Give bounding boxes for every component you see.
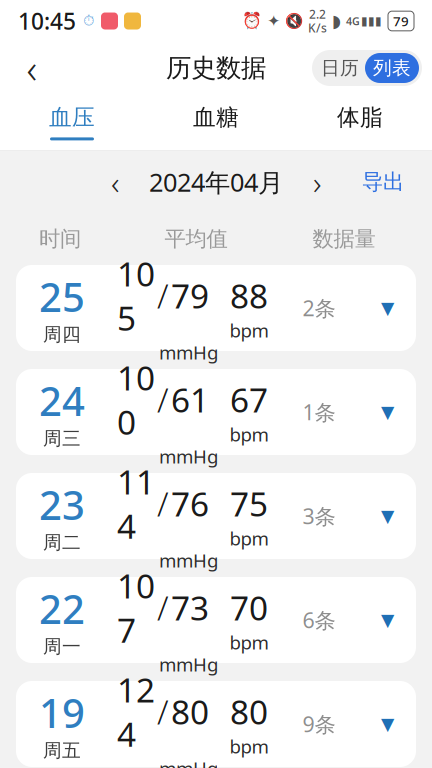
staticText: 1条 (302, 398, 335, 426)
staticText: 2024年04月 (149, 165, 283, 199)
staticText: bpm (229, 318, 268, 342)
button[interactable]: 血糖 (144, 94, 288, 150)
staticText: 周四 (43, 323, 81, 346)
staticText: 25 (39, 270, 85, 323)
staticText: 61 (171, 377, 209, 422)
staticText: 88 (230, 273, 268, 318)
button[interactable]: 下个月 (301, 164, 333, 200)
staticText: / (157, 481, 169, 526)
staticText: / (157, 585, 169, 630)
staticText: 体脂 (337, 104, 383, 131)
staticText: 周二 (43, 531, 81, 554)
staticText: 导出 (362, 169, 404, 195)
staticText: 75 (230, 481, 268, 526)
staticText: 100 (117, 355, 155, 444)
staticText: 67 (230, 377, 268, 422)
button[interactable]: 23 (16, 473, 416, 559)
staticText: 2.2 (309, 6, 326, 22)
staticText: ▼ (381, 714, 394, 734)
staticText: 80 (171, 689, 209, 734)
button[interactable]: 25 (16, 265, 416, 351)
button[interactable]: 导出 (354, 163, 412, 201)
staticText: 周五 (43, 739, 81, 762)
staticText: ‹ (111, 161, 119, 203)
staticText: bpm (229, 630, 268, 654)
staticText: 6条 (302, 606, 335, 634)
button[interactable]: 血压 (0, 94, 144, 150)
staticText: 22 (39, 582, 85, 635)
button[interactable]: 24 (16, 369, 416, 455)
staticText: mmHg (159, 548, 218, 573)
staticText: 76 (171, 481, 209, 526)
button[interactable]: 体脂 (288, 94, 432, 150)
staticText: 105 (117, 251, 155, 340)
staticText: 79 (171, 273, 209, 318)
staticText: 平均值 (164, 226, 227, 252)
staticText: 24 (39, 374, 85, 427)
staticText: ▮▮▮ (361, 14, 382, 28)
staticText: ▼ (381, 298, 394, 318)
staticText: 血糖 (193, 104, 239, 131)
staticText: ⏱ (83, 14, 94, 28)
staticText: 73 (171, 585, 209, 630)
staticText: mmHg (159, 444, 218, 469)
button[interactable]: 日历 (315, 53, 365, 83)
staticText: 历史数据 (166, 52, 266, 83)
staticText: 70 (230, 585, 268, 630)
staticText: 9条 (302, 710, 335, 738)
staticText: 时间 (39, 226, 81, 252)
button[interactable]: 上个月 (99, 164, 131, 200)
staticText: bpm (229, 526, 268, 550)
staticText: 血压 (49, 104, 95, 131)
staticText: 114 (117, 459, 155, 548)
staticText: ‹ (26, 41, 37, 94)
staticText: mmHg (159, 340, 218, 365)
staticText: ▼ (381, 610, 394, 630)
staticText: 周一 (43, 635, 81, 658)
staticText: mmHg (159, 756, 218, 768)
staticText: 107 (117, 563, 155, 652)
staticText: ⏰ (242, 12, 262, 30)
staticText: / (157, 689, 169, 734)
staticText: bpm (229, 422, 268, 446)
button[interactable]: 22 (16, 577, 416, 663)
staticText: 2条 (302, 294, 335, 322)
staticText: 4G (346, 14, 360, 28)
staticText: 🔇 (285, 13, 303, 29)
staticText: ▼ (381, 402, 394, 422)
staticText: ✦ (267, 12, 280, 30)
button[interactable]: 列表 (365, 53, 419, 83)
staticText: K/s (308, 20, 327, 36)
staticText: / (157, 273, 169, 318)
staticText: 23 (39, 478, 85, 531)
staticText: 79 (393, 12, 409, 30)
staticText: ▼ (381, 506, 394, 526)
staticText: 10:45 (18, 6, 76, 36)
staticText: › (313, 161, 321, 203)
button[interactable]: 返回 (10, 46, 54, 90)
staticText: 列表 (373, 56, 411, 79)
button[interactable]: 19 (16, 681, 416, 767)
staticText: mmHg (159, 652, 218, 677)
staticText: 19 (39, 686, 85, 739)
staticText: 日历 (321, 56, 359, 79)
staticText: bpm (229, 734, 268, 758)
staticText: 3条 (302, 502, 335, 530)
staticText: ◗ (332, 11, 341, 31)
staticText: 周三 (43, 427, 81, 450)
staticText: 数据量 (312, 226, 375, 252)
staticText: 124 (117, 667, 155, 756)
staticText: / (157, 377, 169, 422)
staticText: 80 (230, 689, 268, 734)
